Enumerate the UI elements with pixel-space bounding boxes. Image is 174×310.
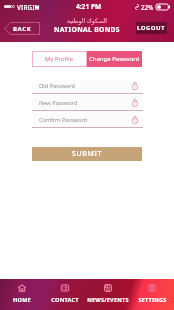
button[interactable]: SETTINGS — [130, 279, 174, 310]
staticText: CONTACT — [51, 296, 79, 304]
staticText: Change Password — [89, 55, 140, 63]
button[interactable]: SUBMIT — [32, 147, 142, 161]
staticText: 4:21 PM — [76, 2, 102, 11]
button[interactable]: New Password — [32, 96, 143, 111]
staticText: BACK — [13, 25, 32, 33]
button[interactable]: Back — [4, 22, 40, 35]
button[interactable]: My Profile — [32, 51, 87, 67]
button[interactable]: CONTACT — [43, 279, 86, 310]
staticText: SUBMIT — [72, 149, 103, 159]
staticText: NEWS/EVENTS — [87, 296, 129, 304]
button[interactable]: Old Password — [32, 79, 143, 94]
button[interactable]: NEWS/EVENTS — [86, 279, 130, 310]
staticText: New Password — [39, 99, 78, 107]
staticText: Confirm Password — [39, 116, 88, 124]
staticText: My Profile — [45, 55, 74, 63]
staticText: NATIONAL BONDS — [54, 25, 120, 34]
button[interactable]: Confirm Password — [32, 113, 143, 128]
staticText: VIRGIN — [17, 3, 40, 11]
staticText: 22% — [141, 3, 154, 11]
button[interactable]: Change Password — [87, 51, 142, 67]
button[interactable]: HOME — [0, 279, 43, 310]
staticText: الصكوك الوطنية — [67, 17, 107, 25]
staticText: SETTINGS — [138, 296, 167, 304]
staticText: LOGOUT — [137, 24, 166, 32]
button[interactable]: LOGOUT — [136, 22, 167, 34]
staticText: HOME — [13, 296, 31, 304]
staticText: Old Password — [39, 82, 76, 90]
